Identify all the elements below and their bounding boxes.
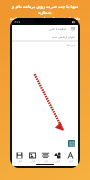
staticText: ابزار xyxy=(18,160,22,162)
staticText: دلخواه خود را به پاورپوینت میتوانید یافت xyxy=(6,16,84,27)
staticText: ابزار xyxy=(56,160,60,162)
staticText: ابزار xyxy=(44,160,48,162)
staticText: ابزار xyxy=(69,160,73,162)
button[interactable]: Font xyxy=(65,150,76,163)
staticText: اینکنت با نامی xyxy=(49,27,67,31)
button[interactable]: Shapes xyxy=(52,150,63,163)
staticText: در برنامه های کامپیوتر xyxy=(6,28,84,34)
button[interactable]: Insert text box xyxy=(68,140,75,147)
staticText: عنوان ارتباطی جدید xyxy=(52,35,75,39)
staticText: ▮▮ xyxy=(72,20,76,23)
button[interactable]: Save xyxy=(14,150,25,163)
staticText: ۱۲:۴۵ xyxy=(14,20,21,23)
button[interactable]: Image xyxy=(27,150,38,163)
staticText: ابزار xyxy=(31,160,35,162)
button[interactable]: Align xyxy=(40,150,51,163)
staticText: متن شما xyxy=(67,44,75,47)
button[interactable]: Menu xyxy=(70,26,76,32)
staticText: تنها با چند ضربه روی برنامه نام و شماره xyxy=(6,4,84,15)
